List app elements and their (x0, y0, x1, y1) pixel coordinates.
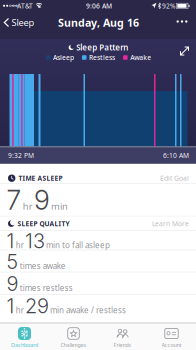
staticText: 6:10 AM (163, 151, 189, 160)
staticText: 92% (162, 1, 176, 10)
staticText: Sleep Pattern (76, 42, 128, 53)
staticText: 1 (6, 229, 14, 253)
staticText: Dashboard (11, 341, 38, 349)
staticText: 13 (25, 229, 45, 253)
staticText: Restless (89, 53, 115, 62)
staticText: hr (16, 305, 24, 315)
staticText: Sunday, Aug 16 (58, 15, 139, 30)
button[interactable]: Edit Goal (160, 174, 189, 183)
staticText: times restless (20, 283, 73, 293)
button[interactable]: Challenges (49, 327, 97, 349)
staticText: min (51, 200, 68, 212)
button[interactable]: Account (147, 327, 195, 349)
button[interactable]: Learn More (152, 219, 189, 228)
button[interactable]: Dashboard (0, 327, 48, 349)
button[interactable]: Sleep (3, 16, 34, 29)
staticText: Sleep (11, 16, 34, 29)
staticText: 9:06 AM (86, 2, 112, 10)
staticText: Learn More (152, 219, 189, 228)
staticText: 9 (34, 184, 50, 216)
staticText: Friends (113, 341, 131, 349)
staticText: Asleep (53, 53, 74, 62)
button[interactable] (179, 46, 189, 56)
staticText: 9 (6, 272, 18, 296)
staticText: 1 (6, 294, 14, 318)
button[interactable] (177, 20, 187, 23)
staticText: times awake (20, 261, 66, 271)
staticText: 9:32 PM (8, 151, 34, 160)
staticText: TIME ASLEEP (18, 174, 62, 183)
staticText: hr (23, 200, 33, 212)
staticText: AT&T (17, 1, 33, 10)
staticText: 5 (6, 250, 18, 274)
staticText: min to fall asleep (46, 240, 110, 250)
staticText: hr (16, 240, 24, 250)
staticText: min awake / restless (50, 305, 126, 315)
button[interactable]: Friends (98, 327, 146, 349)
staticText: 29 (25, 294, 49, 318)
staticText: Edit Goal (160, 174, 189, 183)
staticText: SLEEP QUALITY (18, 219, 70, 228)
staticText: Challenges (60, 341, 86, 349)
staticText: Awake (130, 53, 151, 62)
staticText: Account (161, 341, 181, 349)
staticText: 7 (6, 184, 21, 216)
